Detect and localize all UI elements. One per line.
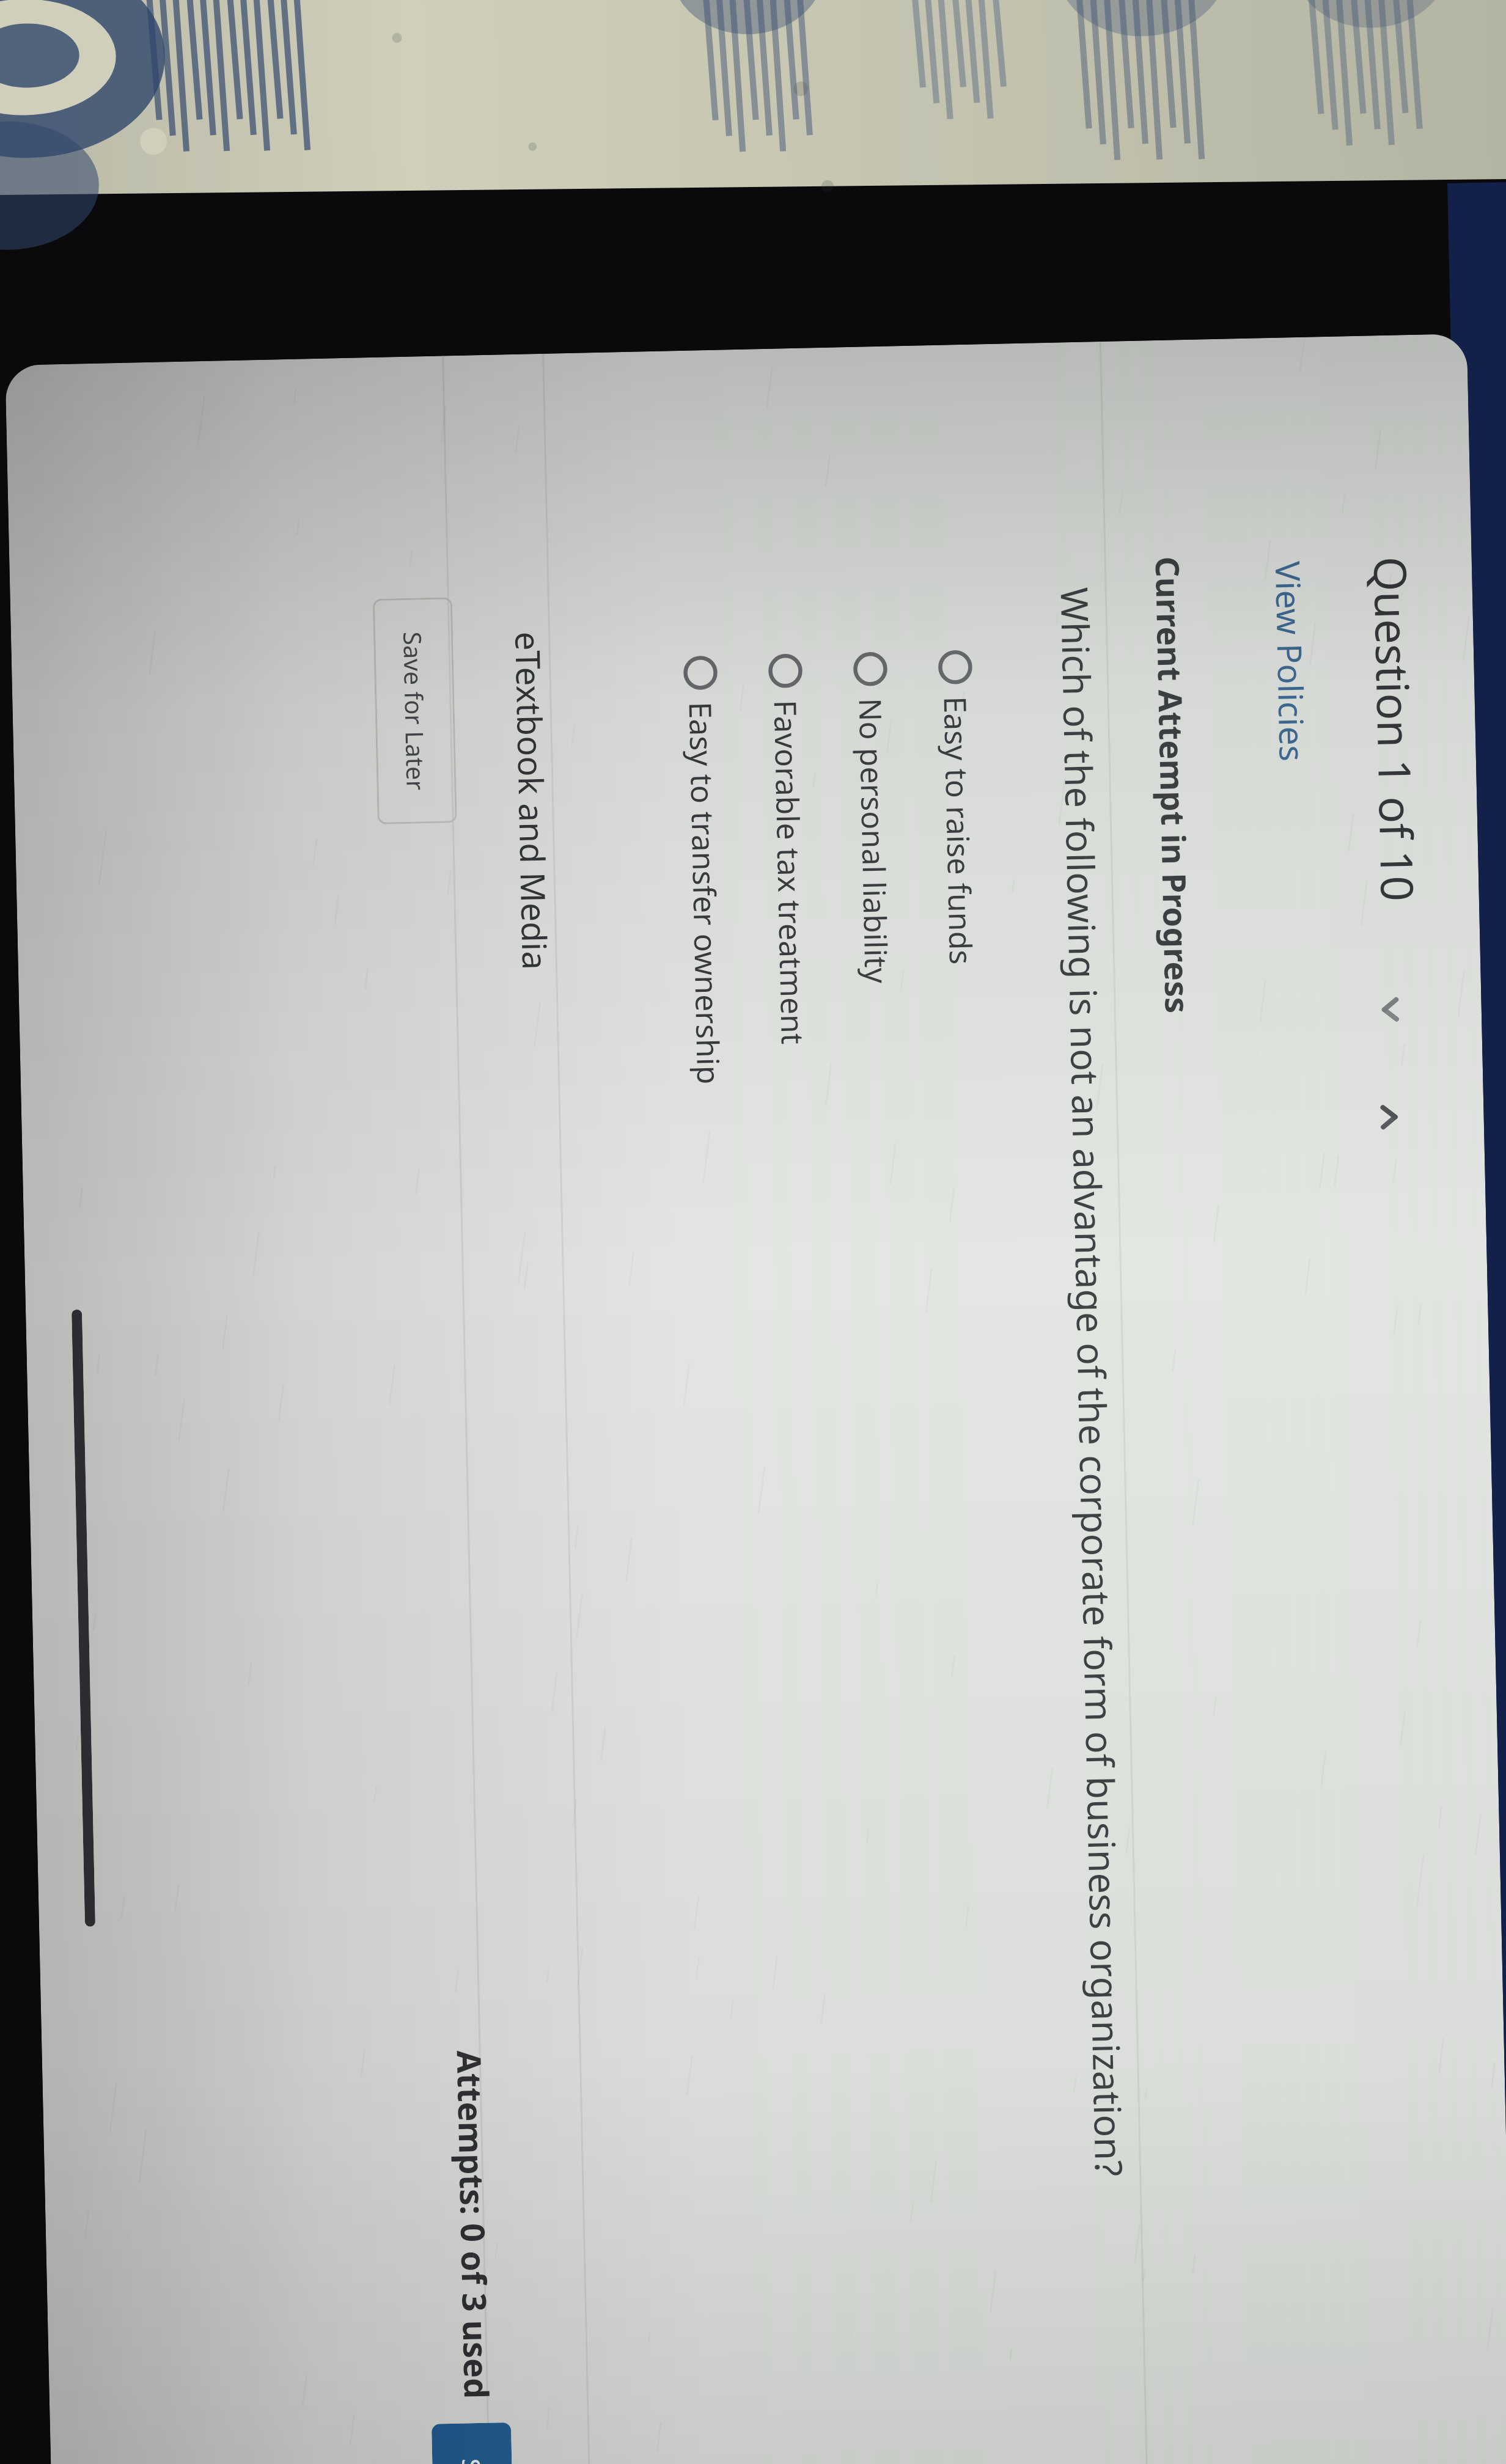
staticText: Favorable tax treatment [765,699,814,1045]
button[interactable]: Submit Answer [431,2422,513,2464]
button[interactable]: Previous question [1351,972,1426,1047]
staticText: Easy to raise funds [935,696,982,966]
staticText: Question 1 of 10 [1361,556,1429,902]
staticText: Easy to transfer ownership [680,701,730,1085]
button[interactable]: eTextbook and Media [494,619,571,1048]
button[interactable]: Save for Later [373,597,457,824]
button[interactable]: Favorable tax treatment [743,653,850,1694]
button[interactable]: Easy to transfer ownership [658,655,765,1696]
staticText: Which of the following is not an advanta… [1050,587,1143,2464]
button[interactable]: Next question [1353,1080,1428,1155]
button[interactable]: Easy to raise funds [912,649,1020,1690]
staticText: eTextbook and Media [505,631,559,971]
button[interactable]: View Policies [1253,548,1328,775]
staticText: View Policies [1266,561,1316,762]
staticText: Submit Answer [455,2458,490,2464]
staticText: Attempts: 0 of 3 used [447,2050,500,2400]
staticText: Current Attempt in Progress [1146,556,1200,1014]
staticText: Save for Later [397,631,433,791]
button[interactable]: No personal liability [828,651,935,1692]
staticText: No personal liability [850,698,898,984]
